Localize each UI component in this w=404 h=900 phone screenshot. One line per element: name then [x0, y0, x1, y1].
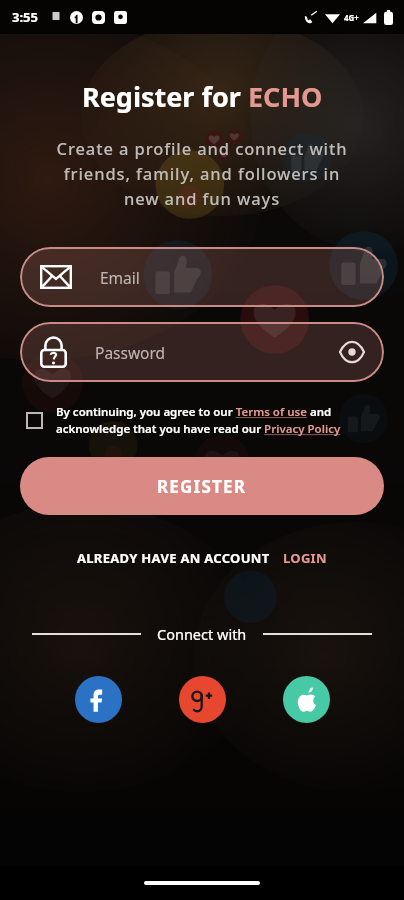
staticText: REGISTER: [157, 475, 247, 498]
staticText: Password: [95, 342, 166, 363]
button[interactable]: Password: [20, 322, 384, 382]
staticText: ALREADY HAVE AN ACCOUNT: [77, 549, 270, 567]
button[interactable]: Sign in with Apple: [283, 676, 330, 723]
button[interactable]: ALREADY HAVE AN ACCOUNT: [0, 549, 404, 567]
button[interactable]: Email: [20, 247, 384, 307]
other: Show password: [340, 344, 364, 360]
other: Accept terms checkbox: [26, 412, 43, 429]
button[interactable]: REGISTER: [20, 457, 384, 515]
staticText: By continuing, you agree to our Terms of…: [56, 404, 378, 437]
staticText: Connect with: [157, 624, 247, 644]
staticText: Create a profile and connect with friend…: [46, 137, 358, 209]
button[interactable]: Sign in with Google: [179, 676, 226, 723]
staticText: LOGIN: [283, 549, 327, 567]
staticText: Email: [100, 267, 140, 288]
staticText: ECHO: [248, 78, 323, 115]
staticText: Register for: [82, 78, 248, 115]
button[interactable]: Accept terms checkbox: [26, 404, 378, 437]
staticText: 3:55: [12, 8, 38, 26]
staticText: 4G+: [344, 12, 359, 23]
button[interactable]: Sign in with Facebook: [75, 676, 122, 723]
